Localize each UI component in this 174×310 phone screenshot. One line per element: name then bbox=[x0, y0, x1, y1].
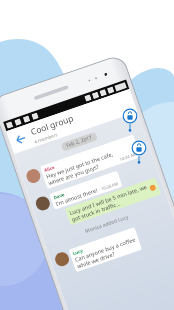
button[interactable]: Lucy bbox=[53, 215, 174, 278]
staticText: I'm almost there! bbox=[54, 186, 98, 207]
staticText: 10:26 AM bbox=[101, 181, 119, 191]
button[interactable]: Back bbox=[6, 89, 137, 154]
button[interactable]: Back bbox=[12, 130, 30, 148]
staticText: Feb 2, 2017 bbox=[65, 134, 93, 149]
staticText: Lucy and I will be 5 min late, we got st… bbox=[68, 183, 150, 223]
staticText: Dave bbox=[53, 191, 66, 200]
staticText: 4 members bbox=[33, 131, 59, 145]
staticText: Cool group bbox=[29, 112, 76, 138]
staticText: Monica added Lucy bbox=[84, 213, 130, 235]
button[interactable]: End-to-end encrypted bbox=[122, 108, 138, 124]
staticText: Hey we just got to the cafe, where are y… bbox=[45, 150, 117, 186]
button[interactable]: Dave bbox=[34, 159, 155, 215]
button[interactable]: Lucy and I will be 5 min late, we got st… bbox=[40, 177, 161, 234]
staticText: Can anyone buy a coffee while we drive? bbox=[74, 235, 139, 269]
staticText: Alice bbox=[43, 164, 55, 173]
staticText: 10:24 AM bbox=[119, 151, 137, 162]
button[interactable]: Alice bbox=[24, 132, 148, 194]
button[interactable]: End-to-end encrypted bbox=[131, 140, 147, 156]
staticText: Lucy bbox=[72, 247, 84, 256]
